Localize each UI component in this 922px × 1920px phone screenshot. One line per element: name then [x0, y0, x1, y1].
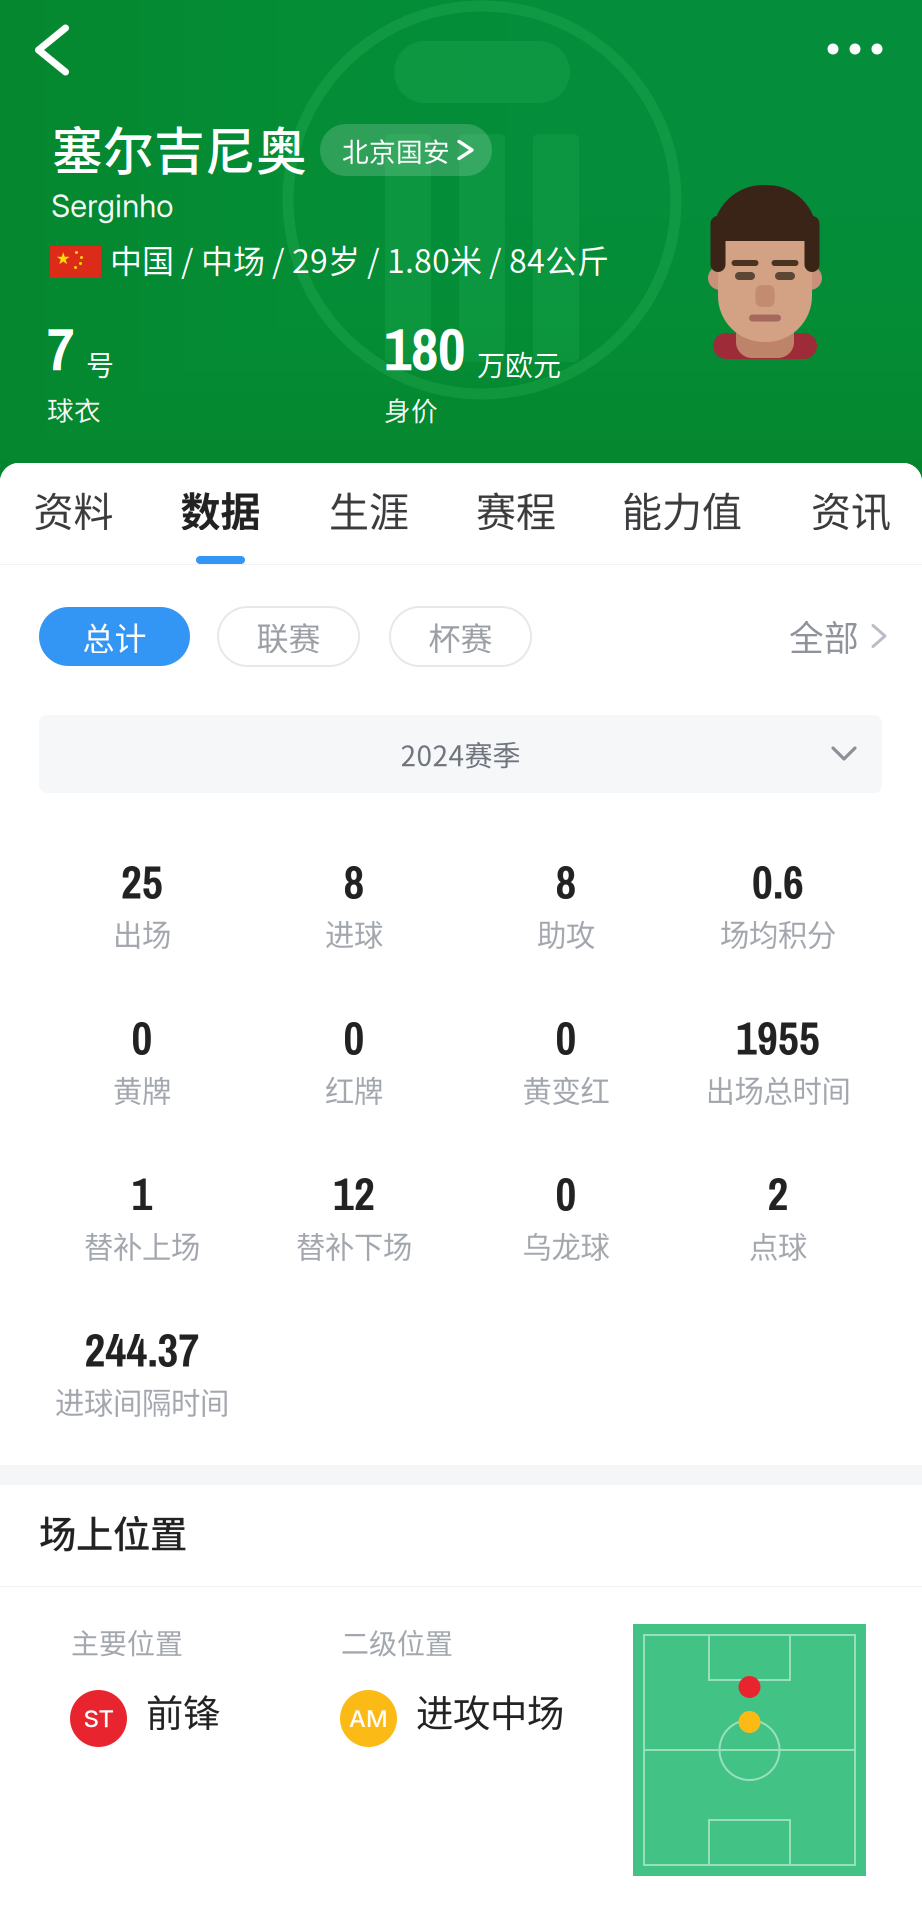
button[interactable]: Back	[4, 4, 100, 96]
button[interactable]: 赛程	[460, 463, 572, 565]
staticText: 数据	[180, 480, 260, 538]
button[interactable]: 能力值	[607, 463, 757, 565]
button[interactable]: 联赛	[218, 607, 359, 666]
staticText: 点球	[749, 1224, 807, 1266]
staticText: 北京国安	[342, 131, 450, 169]
staticText: 生涯	[329, 480, 409, 538]
staticText: 2024赛季	[400, 734, 520, 774]
button[interactable]: 数据	[164, 463, 276, 565]
staticText: 场上位置	[39, 1505, 187, 1559]
staticText: 前锋	[146, 1684, 220, 1738]
staticText: 乌龙球	[522, 1224, 609, 1266]
button[interactable]: 资料	[17, 463, 129, 565]
staticText: 号	[86, 343, 114, 384]
staticText: 黄变红	[522, 1068, 609, 1110]
staticText: Serginho	[51, 187, 174, 224]
staticText: 球衣	[47, 390, 101, 428]
staticText: 总计	[82, 613, 146, 660]
staticText: AM	[349, 1704, 388, 1733]
staticText: 场均积分	[720, 912, 836, 954]
button[interactable]: 杯赛	[390, 607, 531, 666]
staticText: 8	[555, 851, 576, 913]
staticText: 进球间隔时间	[55, 1380, 229, 1422]
staticText: 资料	[33, 480, 113, 538]
staticText: 塞尔吉尼奥	[52, 111, 307, 185]
staticText: 0	[343, 1007, 364, 1069]
staticText: 25	[121, 851, 163, 913]
staticText: 12	[333, 1163, 375, 1225]
button[interactable]: 全部	[782, 606, 892, 666]
button[interactable]: 生涯	[313, 463, 425, 565]
staticText: 杯赛	[428, 613, 492, 660]
staticText: 联赛	[256, 613, 320, 660]
staticText: 0	[555, 1007, 576, 1069]
button[interactable]: 北京国安	[320, 124, 492, 176]
staticText: 1955	[736, 1007, 820, 1069]
staticText: 替补上场	[84, 1224, 200, 1266]
staticText: 1	[131, 1163, 152, 1225]
staticText: 出场总时间	[705, 1068, 850, 1110]
staticText: 8	[343, 851, 364, 913]
staticText: 二级位置	[341, 1622, 453, 1662]
staticText: 244.37	[84, 1319, 199, 1381]
button[interactable]: 资讯	[795, 463, 907, 565]
staticText: 0	[131, 1007, 152, 1069]
staticText: 2	[767, 1163, 788, 1225]
button[interactable]: 总计	[39, 607, 190, 666]
staticText: ST	[83, 1704, 113, 1733]
staticText: 助攻	[537, 912, 595, 954]
staticText: 主要位置	[71, 1622, 183, 1662]
button[interactable]: 2024赛季	[39, 715, 882, 793]
staticText: 替补下场	[296, 1224, 412, 1266]
staticText: 0	[555, 1163, 576, 1225]
staticText: 红牌	[325, 1068, 383, 1110]
staticText: 赛程	[476, 480, 556, 538]
staticText: 进球	[325, 912, 383, 954]
staticText: 7	[47, 308, 74, 389]
staticText: 180	[384, 308, 465, 389]
staticText: 万欧元	[477, 343, 561, 384]
staticText: 能力值	[622, 480, 742, 538]
staticText: 身价	[384, 390, 438, 428]
staticText: 0.6	[752, 851, 804, 913]
staticText: 资讯	[811, 480, 891, 538]
button[interactable]: More options	[804, 3, 906, 95]
staticText: 黄牌	[113, 1068, 171, 1110]
staticText: 中国 / 中场 / 29岁 / 1.80米 / 84公斤	[110, 236, 609, 282]
staticText: 全部	[789, 611, 859, 661]
staticText: 进攻中场	[416, 1684, 564, 1738]
staticText: 出场	[113, 912, 171, 954]
staticText: ★	[55, 250, 70, 268]
